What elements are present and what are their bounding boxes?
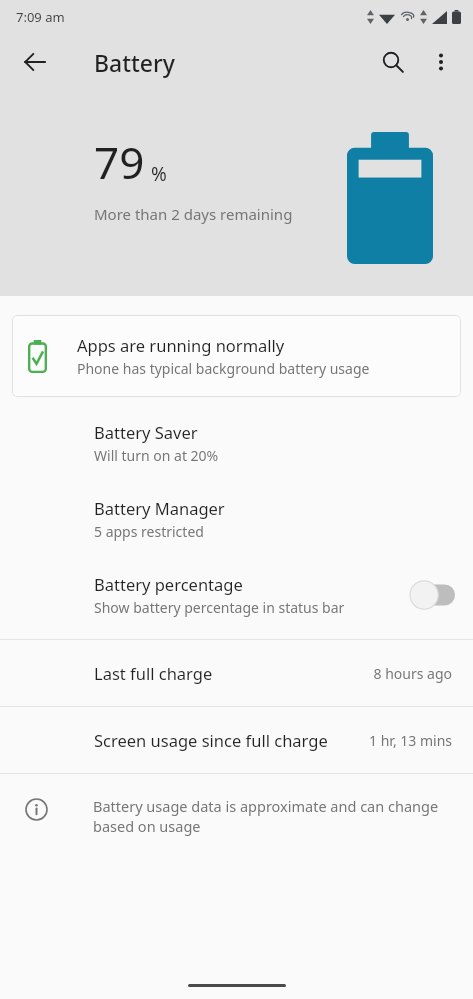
- staticText: %: [151, 161, 167, 187]
- button[interactable]: More options: [417, 38, 465, 86]
- staticText: 5 apps restricted: [94, 522, 204, 541]
- staticText: 7:09 am: [16, 8, 65, 26]
- staticText: Phone has typical background battery usa…: [77, 359, 370, 378]
- staticText: Apps are running normally: [77, 334, 285, 356]
- button[interactable]: Last full charge: [0, 640, 473, 706]
- staticText: Battery usage data is approximate and ca…: [93, 796, 453, 836]
- staticText: Battery Manager: [94, 497, 225, 519]
- staticText: Battery percentage: [94, 573, 243, 595]
- staticText: 79: [94, 132, 145, 192]
- staticText: Show battery percentage in status bar: [94, 598, 345, 617]
- button[interactable]: Battery percentage toggle: [409, 580, 455, 610]
- staticText: More than 2 days remaining: [94, 204, 293, 224]
- staticText: Battery Saver: [94, 421, 198, 443]
- button[interactable]: Battery Saver: [0, 421, 473, 465]
- button[interactable]: Battery percentage: [0, 573, 473, 617]
- staticText: Screen usage since full charge: [94, 729, 328, 751]
- button[interactable]: Search: [369, 38, 417, 86]
- staticText: Will turn on at 20%: [94, 446, 219, 465]
- staticText: Last full charge: [94, 662, 213, 684]
- button[interactable]: Apps are running normally: [12, 315, 461, 397]
- staticText: Battery: [94, 47, 175, 78]
- button[interactable]: Screen usage since full charge: [0, 707, 473, 773]
- button[interactable]: Battery Manager: [0, 497, 473, 541]
- button[interactable]: Back: [11, 38, 59, 86]
- staticText: 1 hr, 13 mins: [369, 731, 452, 750]
- staticText: 8 hours ago: [373, 664, 452, 683]
